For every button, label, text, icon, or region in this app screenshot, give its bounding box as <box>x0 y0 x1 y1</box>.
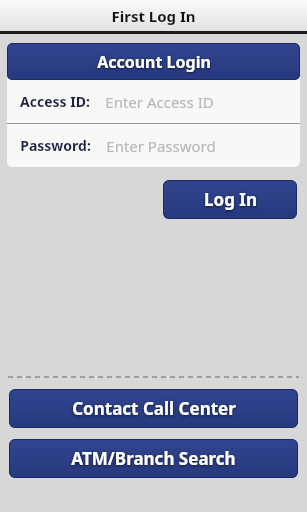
button[interactable]: Access ID: <box>7 80 300 123</box>
button[interactable]: ATM/Branch Search <box>9 439 298 478</box>
staticText: Password: <box>20 136 91 155</box>
button[interactable]: Contact Call Center <box>9 389 298 428</box>
staticText: ATM/Branch Search <box>71 447 236 470</box>
button[interactable]: Password: <box>7 124 300 167</box>
staticText: Account Login <box>97 51 211 73</box>
staticText: Enter Access ID <box>105 92 214 112</box>
staticText: Access ID: <box>20 92 90 111</box>
button[interactable]: Log In <box>163 180 297 219</box>
staticText: Contact Call Center <box>72 397 236 420</box>
staticText: Enter Password <box>106 136 216 156</box>
staticText: First Log In <box>111 6 196 26</box>
staticText: Log In <box>204 188 257 211</box>
button[interactable]: Account Login <box>7 43 300 80</box>
